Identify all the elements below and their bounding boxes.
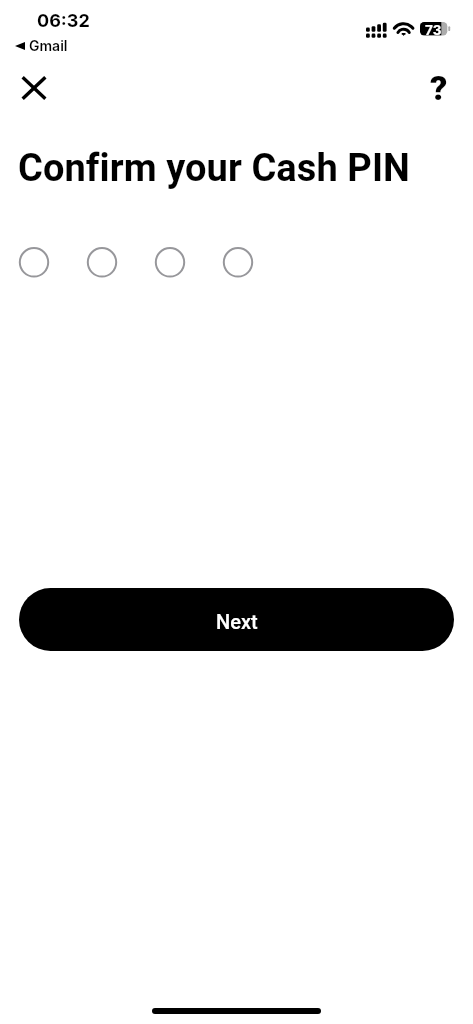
- button[interactable]: Close: [10, 64, 58, 112]
- staticText: Confirm your Cash PIN: [18, 146, 411, 191]
- staticText: Next: [216, 610, 258, 633]
- button[interactable]: Help: [415, 64, 463, 112]
- button[interactable]: Next: [19, 588, 454, 651]
- staticText: 73: [425, 22, 442, 37]
- staticText: 06:32: [37, 10, 90, 32]
- staticText: Gmail: [29, 37, 68, 54]
- staticText: ?: [430, 68, 448, 108]
